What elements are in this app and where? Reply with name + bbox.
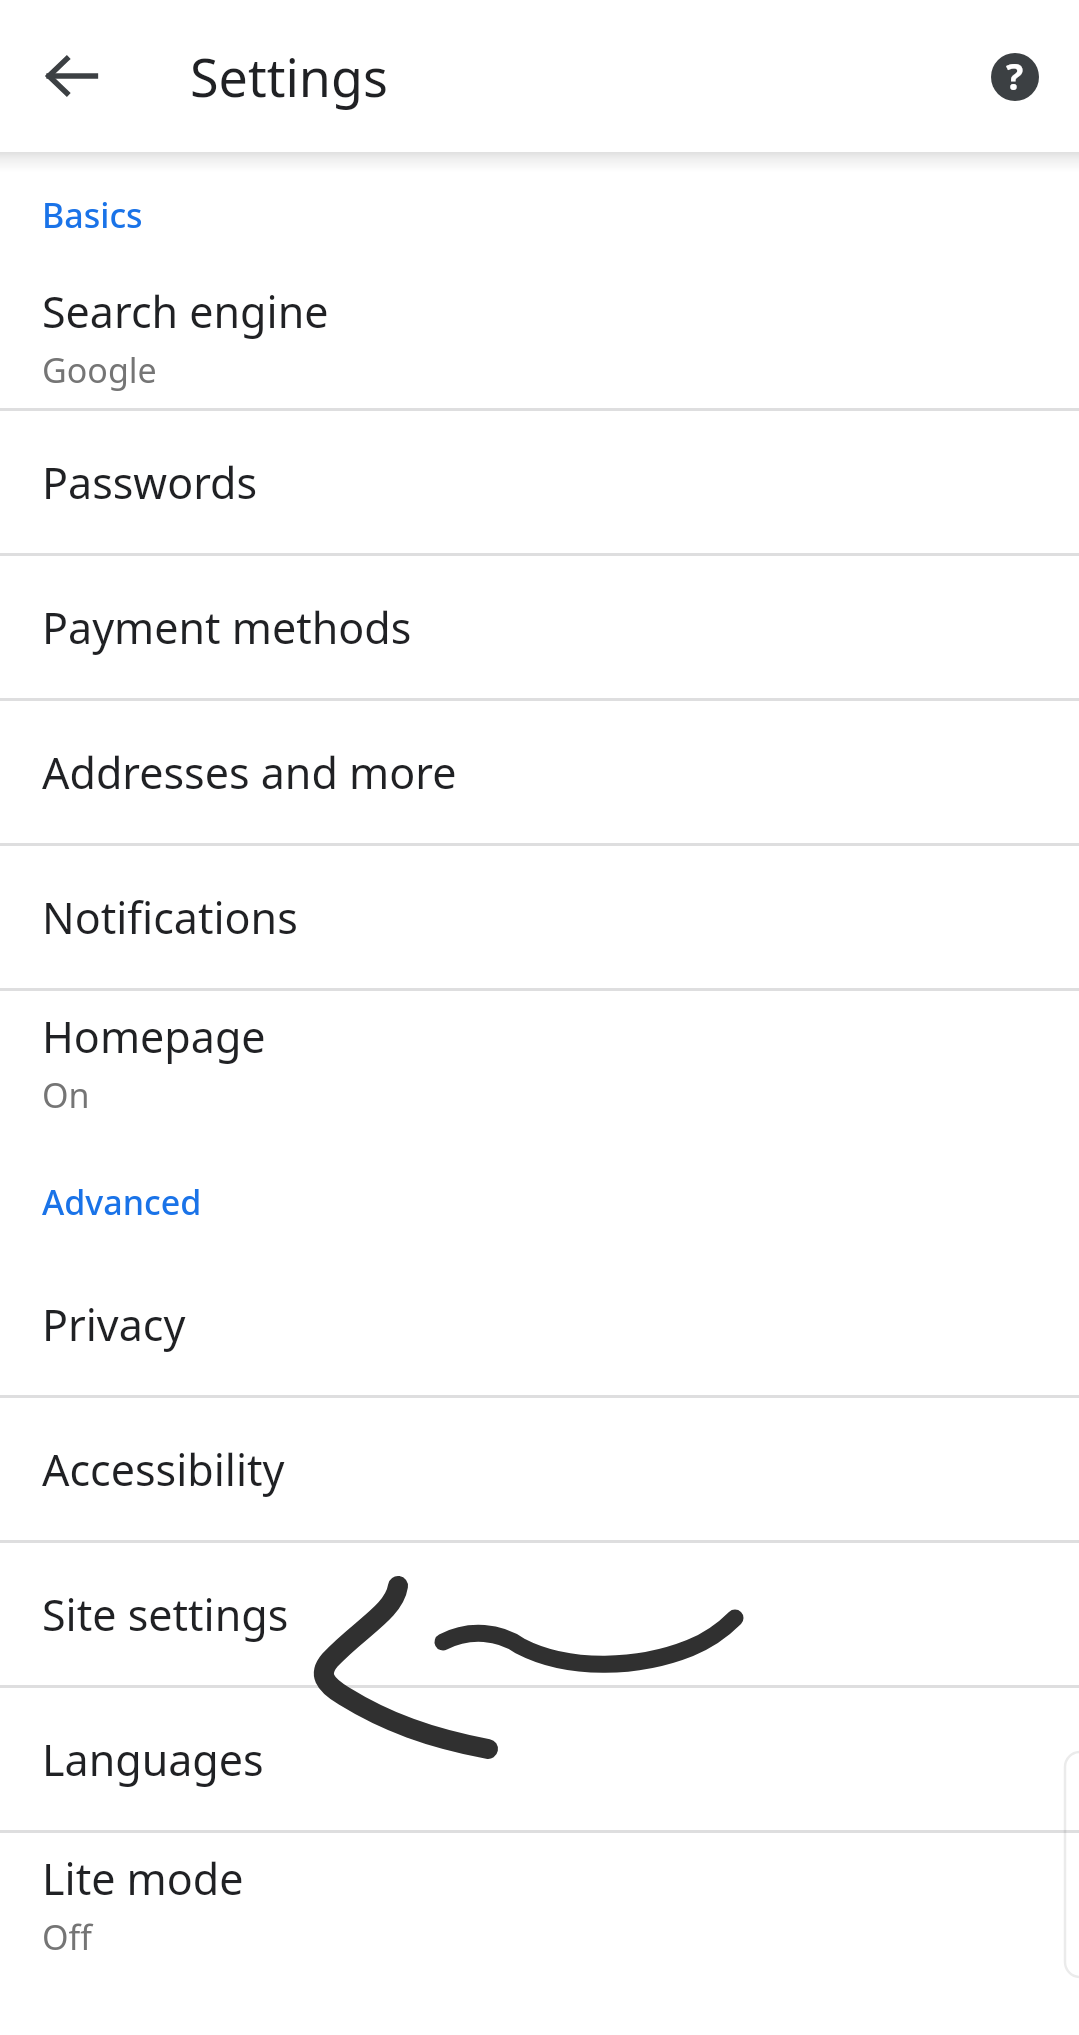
staticText: Homepage: [42, 1007, 266, 1066]
staticText: Payment methods: [42, 598, 412, 657]
button[interactable]: Site settings: [0, 1543, 1079, 1685]
button[interactable]: Back: [24, 28, 120, 124]
staticText: Google: [42, 347, 157, 393]
staticText: Passwords: [42, 453, 258, 512]
staticText: Accessibility: [42, 1440, 285, 1499]
button[interactable]: Notifications: [0, 846, 1079, 988]
button[interactable]: Privacy: [0, 1253, 1079, 1395]
staticText: Languages: [42, 1730, 264, 1789]
staticText: Privacy: [42, 1295, 186, 1354]
button[interactable]: Homepage: [0, 991, 1079, 1133]
staticText: Settings: [190, 41, 388, 112]
staticText: Basics: [42, 192, 143, 238]
button[interactable]: Lite mode: [0, 1833, 1079, 1975]
staticText: Site settings: [42, 1585, 289, 1644]
staticText: Addresses and more: [42, 743, 457, 802]
button[interactable]: Addresses and more: [0, 701, 1079, 843]
staticText: On: [42, 1072, 90, 1118]
staticText: ?: [1006, 52, 1024, 101]
button[interactable]: Help: [967, 28, 1063, 124]
button[interactable]: Passwords: [0, 411, 1079, 553]
staticText: Lite mode: [42, 1849, 244, 1908]
button[interactable]: Payment methods: [0, 556, 1079, 698]
staticText: Notifications: [42, 888, 298, 947]
staticText: Off: [42, 1914, 92, 1960]
button[interactable]: Accessibility: [0, 1398, 1079, 1540]
staticText: Search engine: [42, 282, 329, 341]
button[interactable]: Search engine: [0, 266, 1079, 408]
staticText: Advanced: [42, 1179, 202, 1225]
button[interactable]: Languages: [0, 1688, 1079, 1830]
